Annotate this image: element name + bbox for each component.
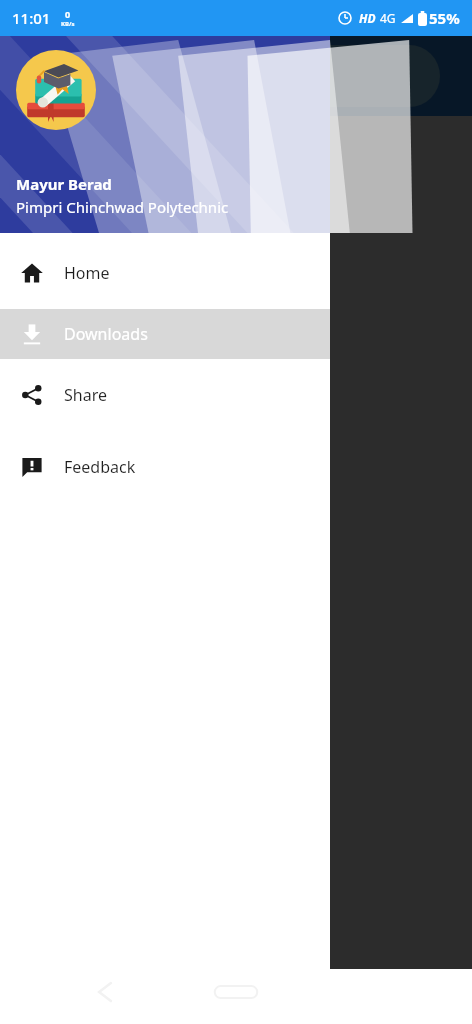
button[interactable]: Feedback (0, 431, 330, 503)
staticText: Home (64, 262, 110, 284)
staticText: 4G (380, 10, 396, 26)
button[interactable]: Share (0, 359, 330, 431)
staticText: 55% (429, 8, 460, 28)
staticText: MSBTE SOLUTION (38, 61, 225, 91)
button[interactable]: Home (0, 237, 330, 309)
button[interactable]: Downloads (0, 309, 330, 359)
staticText: HD (359, 10, 376, 26)
staticText: KB/s (61, 20, 75, 28)
staticText: Mayur Berad (16, 174, 112, 194)
staticText: Pimpri Chinchwad Polytechnic (16, 197, 229, 217)
staticText: 0 (65, 8, 71, 20)
staticText: 11:01 (12, 8, 51, 28)
staticText: Share (64, 384, 107, 406)
button[interactable]: MSBTE SOLUTION (14, 45, 440, 107)
staticText: Feedback (64, 456, 136, 478)
staticText: Downloads (64, 323, 148, 345)
